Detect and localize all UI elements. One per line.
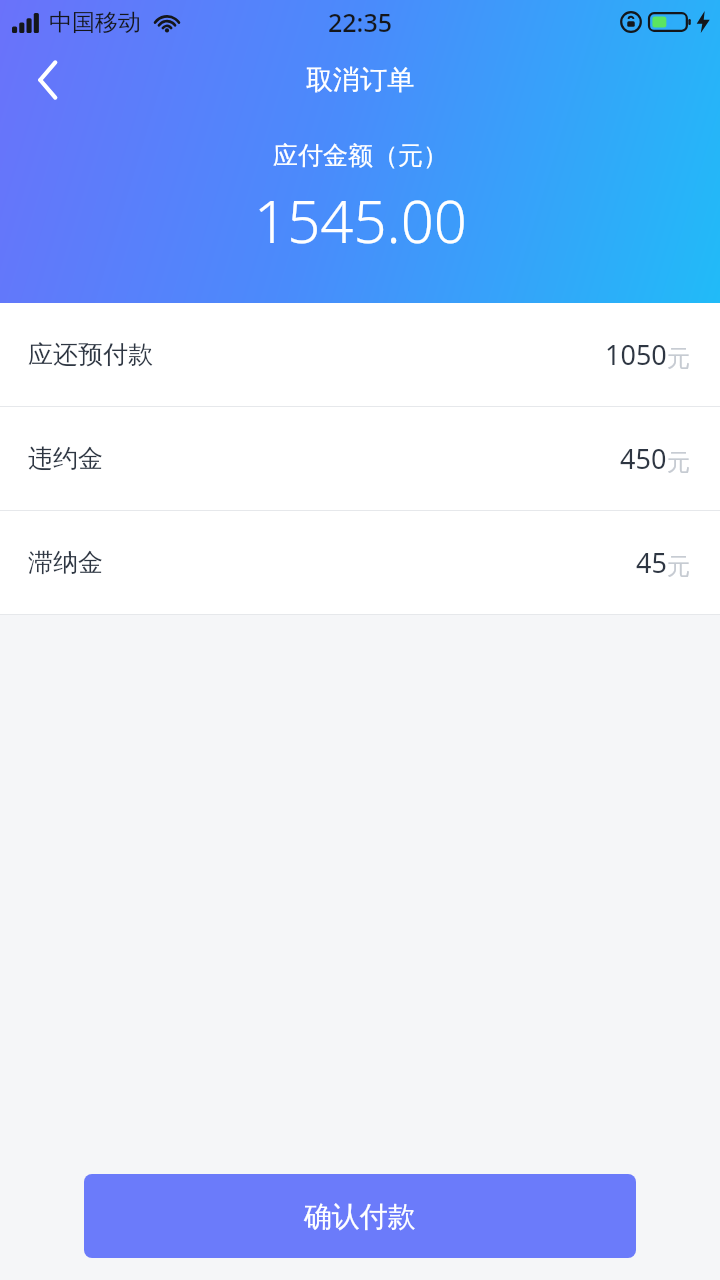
staticText: 应还预付款 (28, 339, 153, 370)
staticText: 中国移动 (49, 8, 141, 37)
button[interactable]: 应还预付款 (0, 303, 720, 406)
staticText: 450 (620, 440, 667, 477)
button[interactable]: 违约金 (0, 407, 720, 510)
staticText: 违约金 (28, 443, 103, 474)
staticText: 1050 (605, 336, 667, 373)
button[interactable]: 确认付款 (84, 1174, 636, 1258)
staticText: 22:35 (328, 5, 393, 39)
staticText: 取消订单 (306, 63, 414, 97)
staticText: 元 (667, 448, 690, 477)
staticText: 45 (636, 544, 667, 581)
staticText: 1545.00 (254, 181, 467, 260)
staticText: 元 (667, 344, 690, 373)
staticText: 确认付款 (304, 1199, 416, 1234)
staticText: 滞纳金 (28, 547, 103, 578)
button[interactable]: 滞纳金 (0, 511, 720, 614)
staticText: 元 (667, 552, 690, 581)
staticText: 应付金额（元） (273, 140, 448, 171)
button[interactable]: Back (16, 44, 80, 116)
